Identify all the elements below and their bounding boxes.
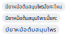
staticText: มียาหม้อต้มสมุนไพรมั้ยคะ xyxy=(5,15,57,21)
staticText: มียาหม้อต้มสมุนไพรมั้ยคะไหม xyxy=(5,4,62,9)
staticText: มียาหม้อต้มสมุนไพร xyxy=(5,26,56,32)
